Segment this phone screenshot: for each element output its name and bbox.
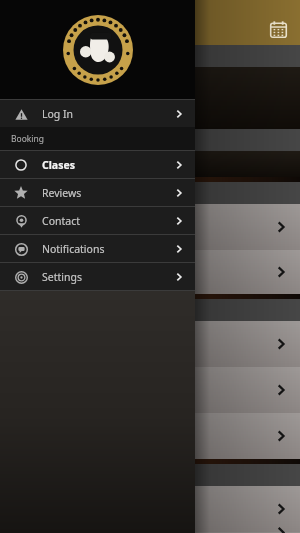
button[interactable]: Calendar	[265, 16, 291, 42]
button[interactable]	[0, 67, 300, 129]
staticText: Notifications	[42, 242, 105, 256]
button[interactable]	[0, 413, 300, 459]
button[interactable]	[0, 532, 300, 533]
button[interactable]	[0, 367, 300, 413]
button[interactable]: Notifications	[0, 235, 195, 262]
button[interactable]: Log In	[0, 100, 195, 127]
staticText: Reviews	[42, 186, 82, 200]
staticText: Clases	[42, 158, 75, 172]
button[interactable]	[0, 151, 300, 177]
button[interactable]	[0, 204, 300, 250]
staticText: Log In	[42, 107, 74, 121]
staticText: Booking	[11, 133, 45, 145]
button[interactable]	[0, 486, 300, 532]
staticText: Settings	[42, 270, 82, 284]
button[interactable]: Settings	[0, 263, 195, 290]
button[interactable]	[0, 250, 300, 294]
button[interactable]: Reviews	[0, 179, 195, 206]
staticText: Contact	[42, 214, 80, 228]
button[interactable]: Clases	[0, 151, 195, 178]
button[interactable]: Contact	[0, 207, 195, 234]
button[interactable]	[0, 321, 300, 367]
